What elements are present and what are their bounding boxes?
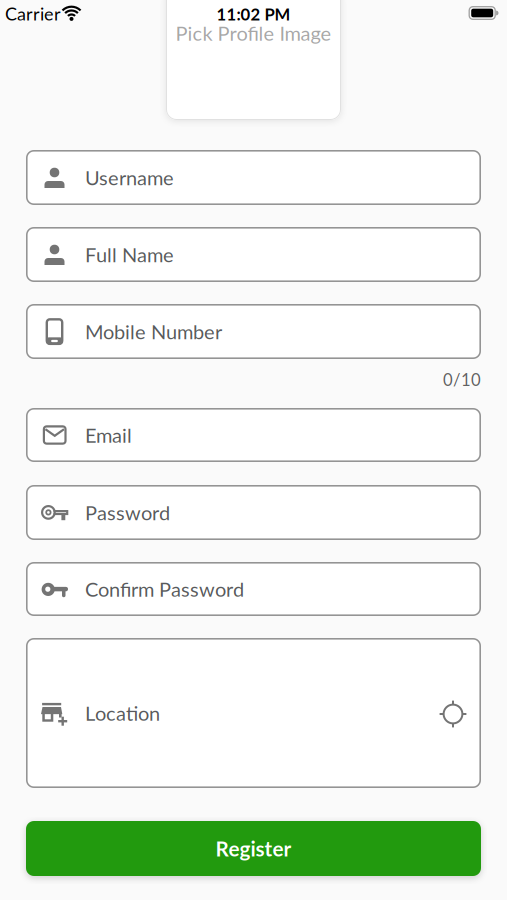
staticText: 11:02 PM (216, 4, 290, 24)
button[interactable]: Pick Profile Image (166, 0, 341, 120)
staticText: Password (85, 500, 170, 524)
button[interactable]: Password (26, 485, 481, 540)
staticText: Full Name (85, 242, 174, 266)
staticText: Location (85, 701, 160, 725)
button[interactable]: Register (26, 821, 481, 876)
staticText: Username (85, 165, 174, 189)
staticText: Confirm Password (85, 577, 244, 601)
staticText: 0/10 (443, 369, 481, 389)
button[interactable]: Confirm Password (26, 562, 481, 616)
button[interactable]: Email (26, 408, 481, 462)
staticText: Email (85, 423, 132, 447)
staticText: Carrier (5, 3, 61, 24)
staticText: Register (215, 836, 291, 861)
button[interactable]: Location (26, 638, 481, 788)
button[interactable]: Mobile Number (26, 304, 481, 359)
button[interactable]: Username (26, 150, 481, 205)
staticText: Pick Profile Image (175, 21, 331, 45)
staticText: Mobile Number (85, 319, 222, 343)
button[interactable]: Use current location (439, 700, 467, 728)
button[interactable]: Full Name (26, 227, 481, 282)
